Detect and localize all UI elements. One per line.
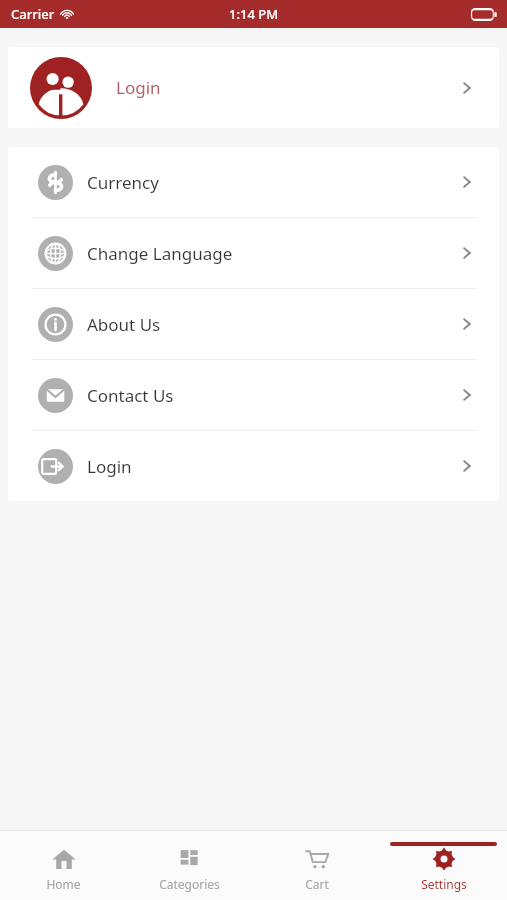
button[interactable]: Login (8, 47, 499, 128)
button[interactable]: Change Language (8, 218, 499, 288)
button[interactable]: Login (8, 431, 499, 501)
staticText: About Us (87, 313, 161, 336)
button[interactable]: Home (0, 831, 126, 900)
staticText: Login (116, 76, 161, 99)
button[interactable]: Currency (8, 147, 499, 217)
staticText: Carrier (11, 5, 55, 23)
staticText: 1:14 PM (229, 5, 279, 23)
staticText: Cart (305, 876, 329, 892)
staticText: Categories (159, 876, 220, 892)
staticText: Login (87, 455, 132, 478)
button[interactable]: Contact Us (8, 360, 499, 430)
staticText: Currency (87, 171, 159, 194)
button[interactable]: Settings (380, 831, 507, 900)
staticText: Settings (421, 876, 467, 892)
button[interactable]: Categories (126, 831, 253, 900)
button[interactable]: Cart (253, 831, 380, 900)
staticText: Change Language (87, 242, 233, 265)
staticText: Home (46, 876, 81, 892)
button[interactable]: About Us (8, 289, 499, 359)
staticText: Contact Us (87, 384, 174, 407)
